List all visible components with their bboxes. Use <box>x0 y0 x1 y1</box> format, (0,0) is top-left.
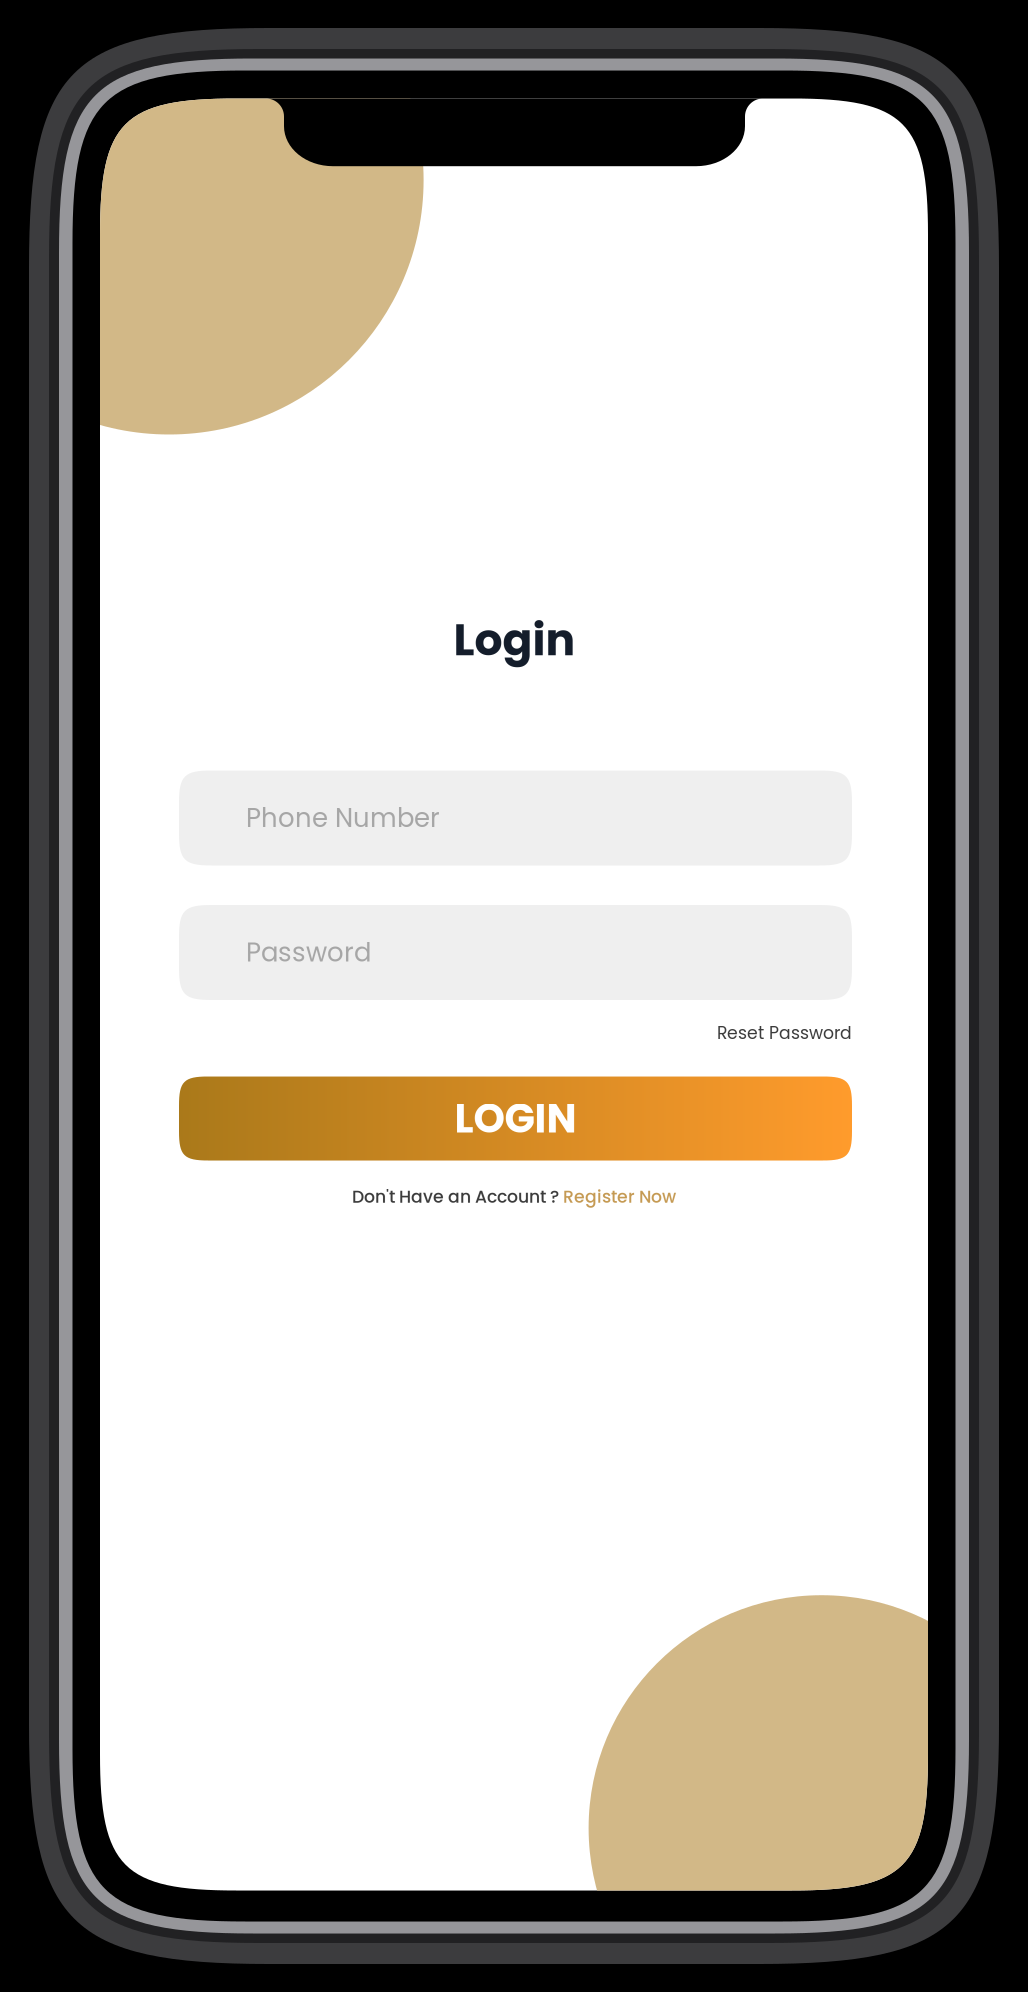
staticText: Password <box>246 934 371 971</box>
staticText: LOGIN <box>454 1090 576 1146</box>
staticText: Register Now <box>563 1185 676 1209</box>
button[interactable]: Register Now <box>563 1185 676 1209</box>
staticText: Login <box>453 609 575 671</box>
button[interactable]: Reset Password <box>717 1021 852 1045</box>
staticText: Reset Password <box>717 1021 852 1045</box>
button[interactable]: LOGIN <box>179 1076 852 1160</box>
staticText: Don't Have an Account ? <box>352 1185 563 1209</box>
staticText: Phone Number <box>246 800 440 836</box>
